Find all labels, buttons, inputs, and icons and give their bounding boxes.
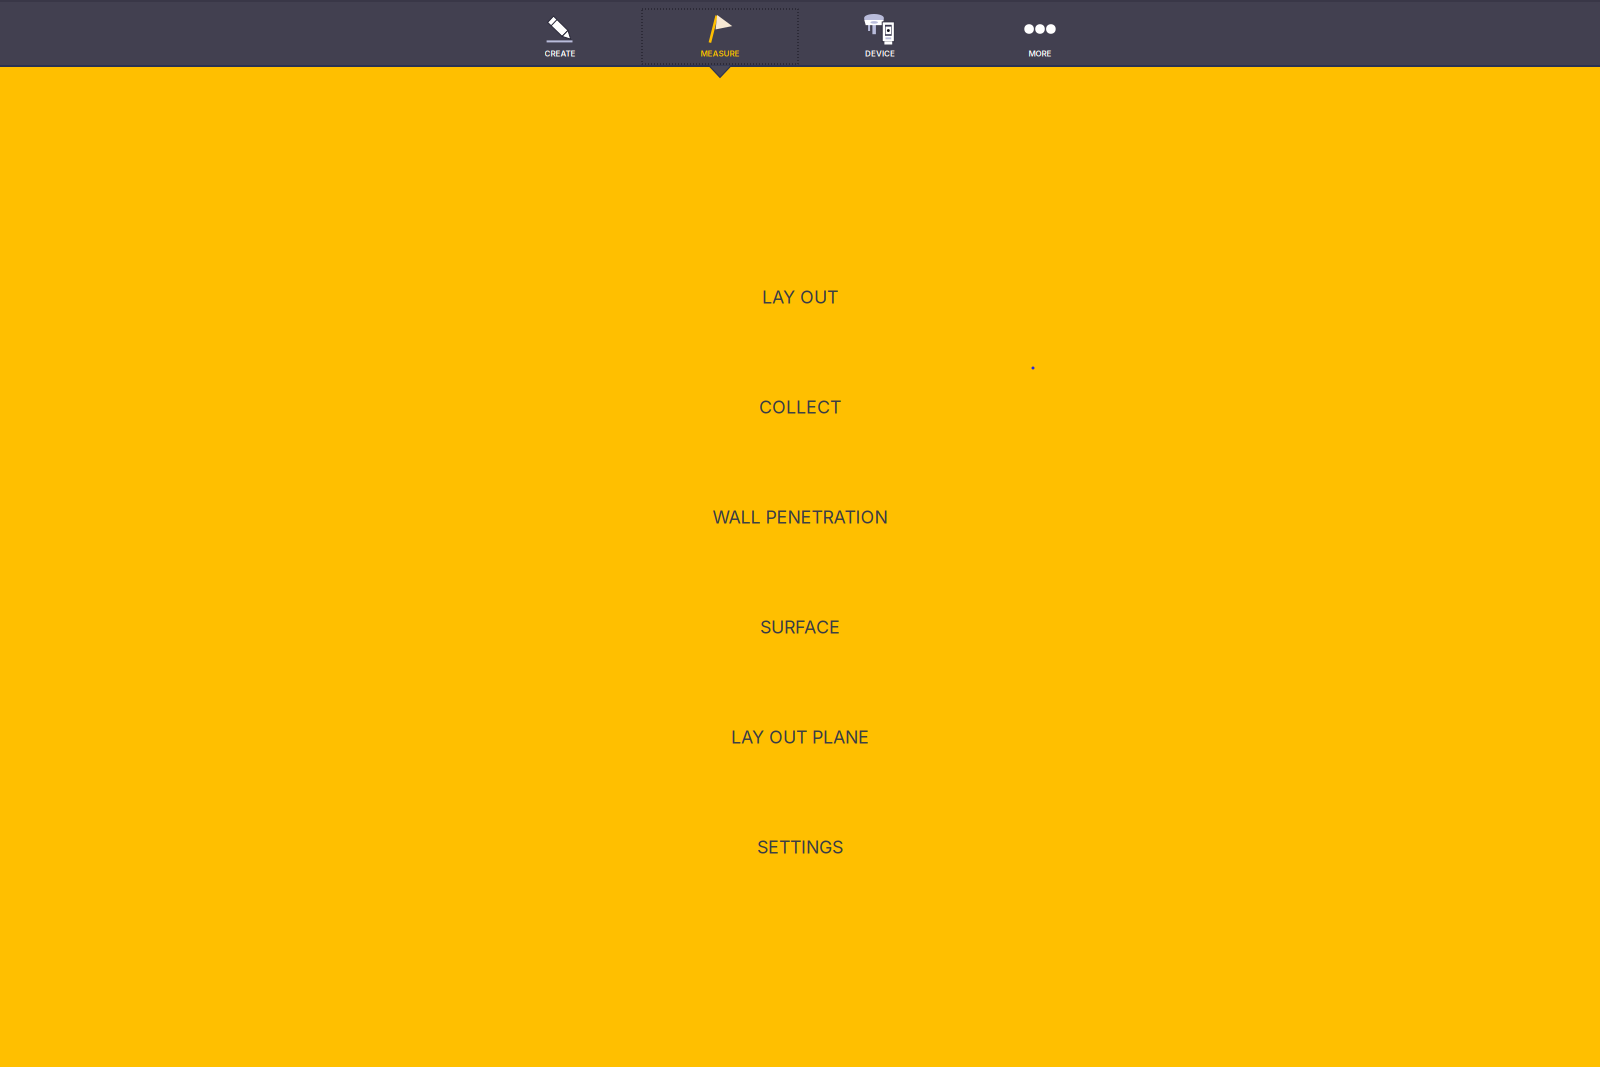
staticText: LAY OUT PLANE (731, 726, 869, 748)
button[interactable]: MEASURE (640, 0, 800, 65)
button[interactable]: DEVICE (800, 0, 960, 65)
staticText: SURFACE (760, 616, 840, 638)
button[interactable]: SURFACE (540, 584, 1060, 670)
staticText: CREATE (544, 49, 575, 58)
staticText: SETTINGS (757, 836, 843, 858)
staticText: MEASURE (700, 49, 739, 58)
button[interactable]: LAY OUT PLANE (540, 694, 1060, 780)
staticText: DEVICE (865, 49, 895, 58)
staticText: WALL PENETRATION (712, 506, 887, 528)
button[interactable]: LAY OUT (540, 254, 1060, 340)
button[interactable]: MORE (960, 0, 1120, 65)
staticText: MORE (1028, 49, 1051, 58)
button[interactable]: COLLECT (540, 364, 1060, 450)
staticText: COLLECT (759, 396, 841, 418)
button[interactable]: SETTINGS (540, 804, 1060, 890)
button[interactable]: WALL PENETRATION (540, 474, 1060, 560)
button[interactable]: CREATE (480, 0, 640, 65)
staticText: LAY OUT (762, 286, 838, 308)
